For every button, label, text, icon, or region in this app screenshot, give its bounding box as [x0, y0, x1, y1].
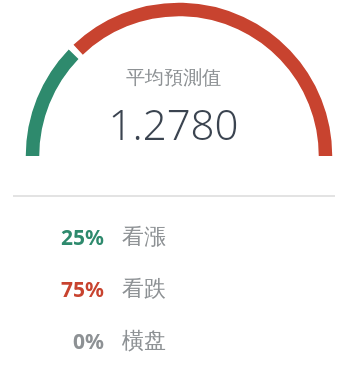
staticText: 看漲 [122, 223, 166, 251]
staticText: 75% [61, 275, 104, 304]
button[interactable]: 0% [0, 315, 347, 367]
staticText: 0% [73, 327, 104, 356]
staticText: 平均預測值 [126, 66, 221, 90]
button[interactable]: 25% [0, 211, 347, 263]
staticText: 25% [61, 223, 104, 252]
button[interactable]: 75% [0, 263, 347, 315]
staticText: 橫盘 [122, 327, 166, 355]
staticText: 1.2780 [108, 95, 239, 152]
staticText: 看跌 [122, 275, 166, 303]
